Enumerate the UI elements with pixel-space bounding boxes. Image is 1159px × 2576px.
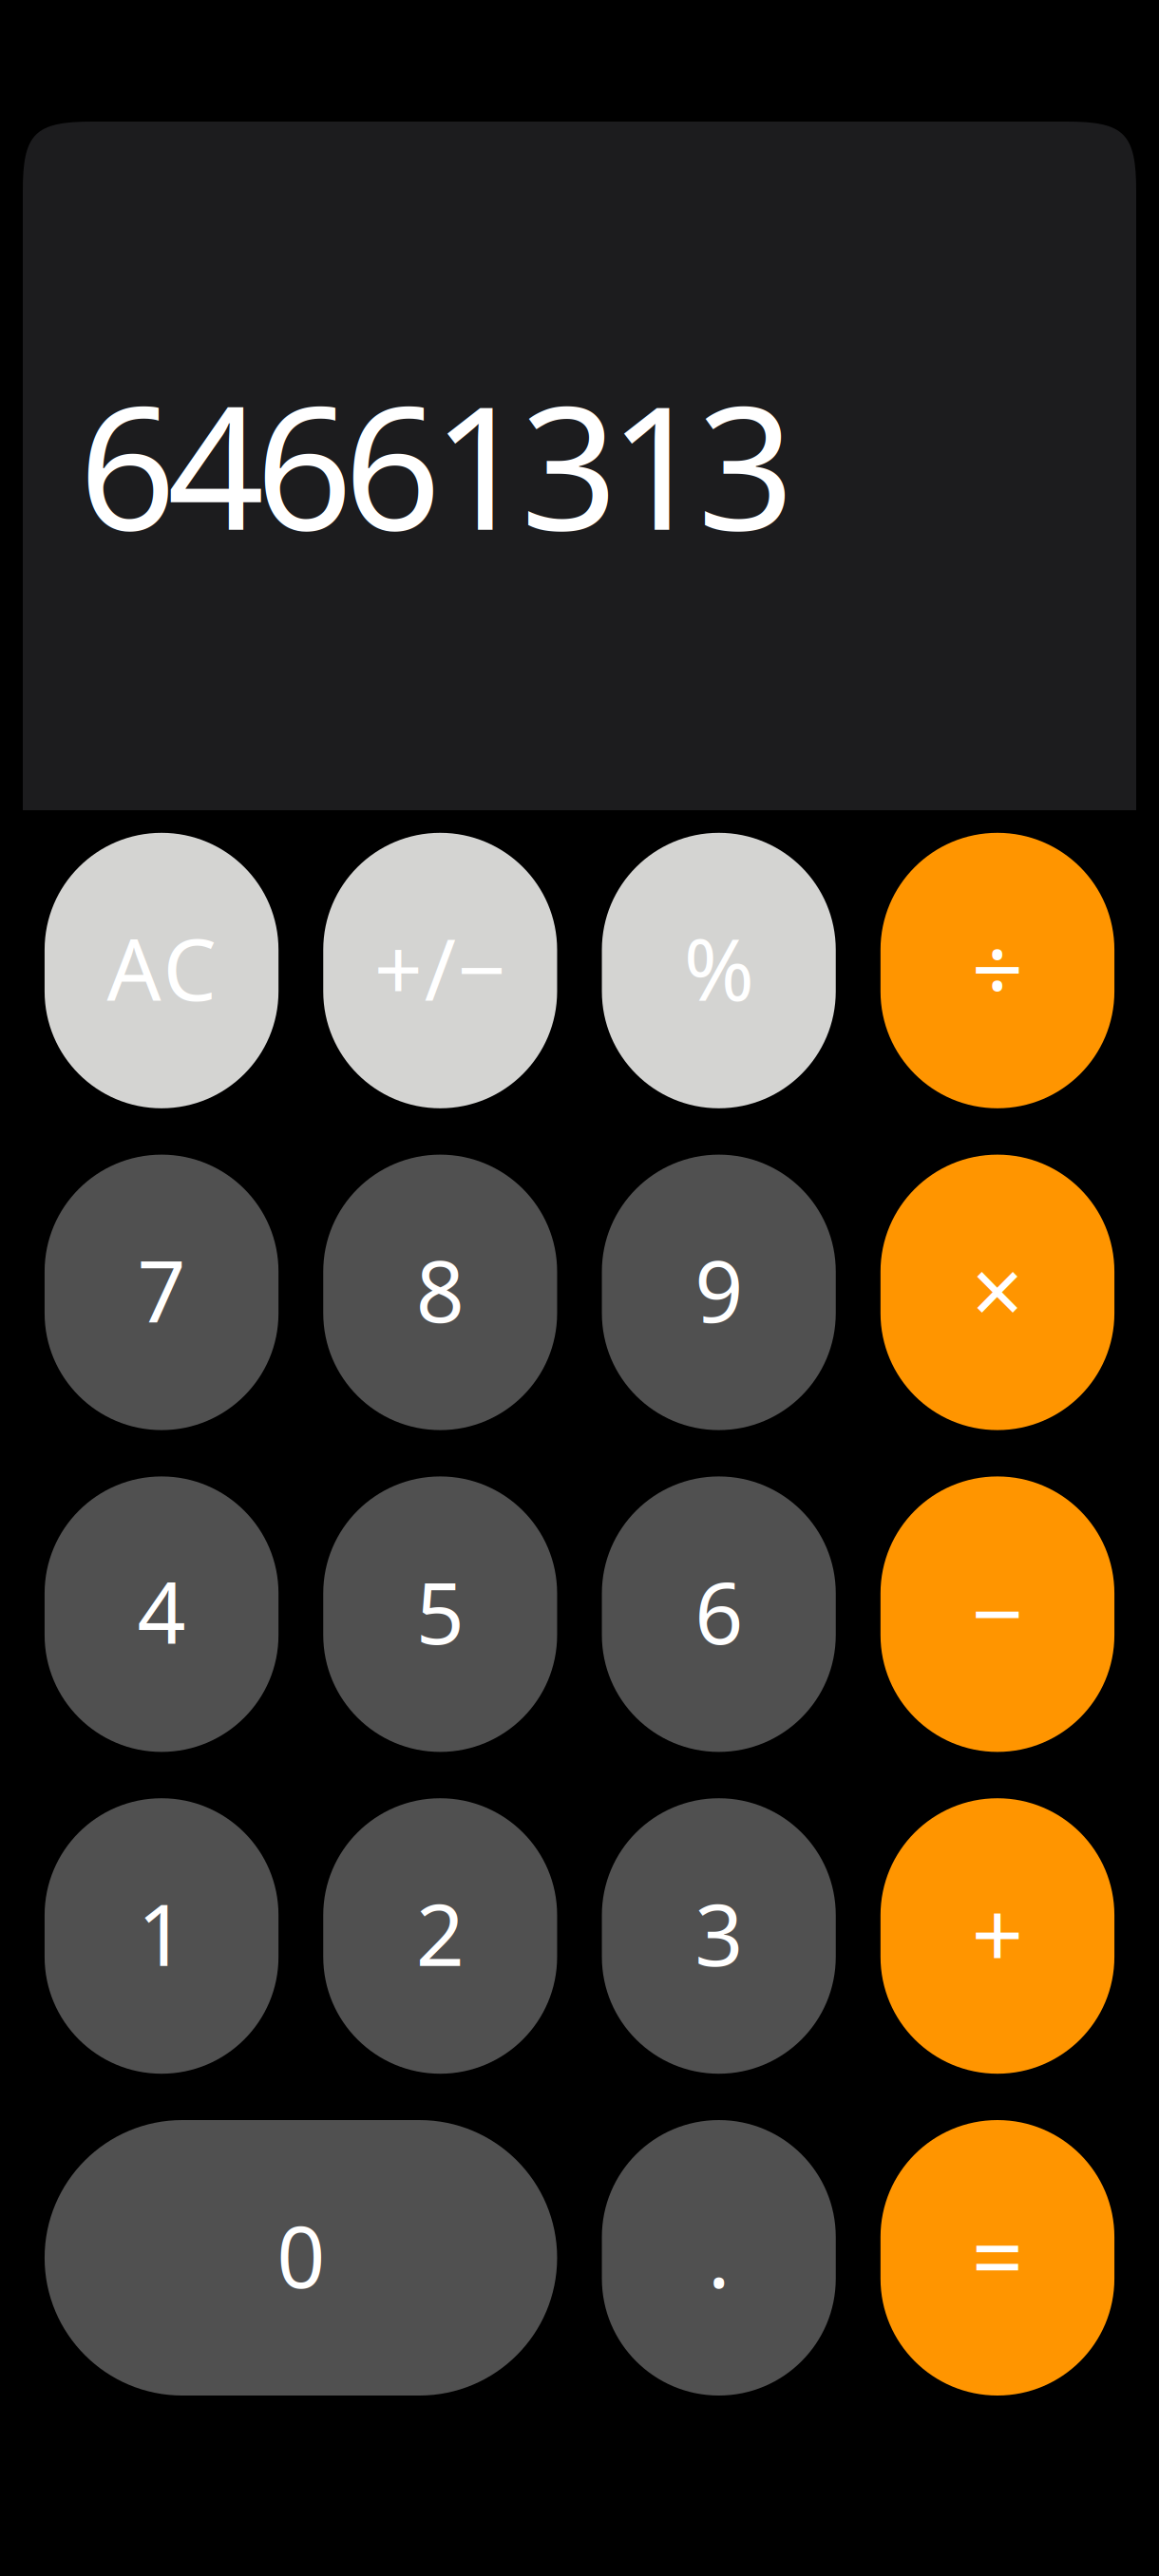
button[interactable]: 6 [602,1476,836,1752]
button[interactable]: 5 [323,1476,557,1752]
staticText: 8 [416,1233,464,1346]
staticText: 1 [137,1877,186,1989]
staticText: +/− [374,911,506,1024]
staticText: + [971,1873,1024,1994]
staticText: 5 [416,1555,464,1668]
button[interactable]: 8 [323,1155,557,1430]
button[interactable]: 7 [45,1155,279,1430]
button[interactable]: Subtract [881,1476,1114,1752]
staticText: × [971,1229,1024,1350]
staticText: − [971,1551,1024,1672]
button[interactable]: All Clear [45,833,279,1108]
button[interactable]: 2 [323,1798,557,2074]
button[interactable]: Multiply [881,1155,1114,1430]
button[interactable]: Toggle sign [323,833,557,1108]
button[interactable]: 9 [602,1155,836,1430]
button[interactable]: Equals [881,2120,1114,2396]
staticText: % [684,911,754,1024]
staticText: 6 [695,1555,743,1668]
staticText: 0 [277,2199,325,2311]
button[interactable]: Divide [881,833,1114,1108]
staticText: 3 [695,1877,743,1989]
staticText: 9 [695,1233,743,1346]
button[interactable]: Add [881,1798,1114,2074]
button[interactable]: Percent [602,833,836,1108]
staticText: 64661313 [79,351,794,577]
staticText: AC [107,911,216,1024]
staticText: ÷ [971,907,1024,1028]
staticText: 7 [137,1233,186,1346]
staticText: 4 [137,1555,186,1668]
button[interactable]: 1 [45,1798,279,2074]
staticText: = [971,2194,1024,2316]
button[interactable]: 3 [602,1798,836,2074]
button[interactable]: Decimal point [602,2120,836,2396]
staticText: 2 [416,1877,464,1989]
staticText: . [707,2199,730,2311]
button[interactable]: 4 [45,1476,279,1752]
button[interactable]: 0 [45,2120,557,2396]
